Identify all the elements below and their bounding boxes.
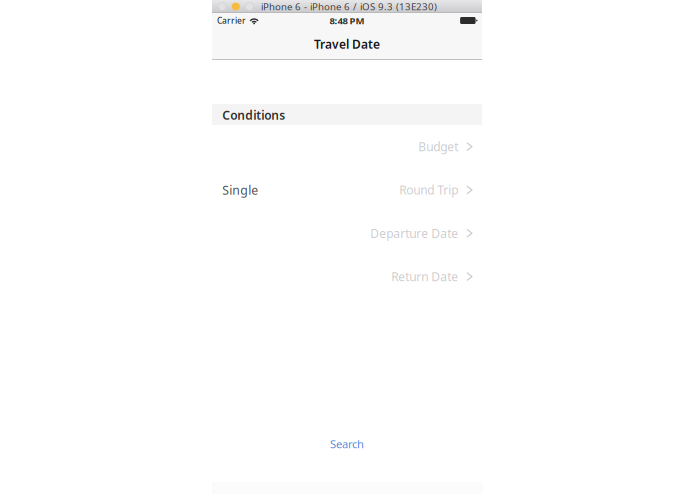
- staticText: iPhone 6 - iPhone 6 / iOS 9.3 (13E230): [261, 0, 437, 13]
- button[interactable]: Close window: [218, 2, 226, 10]
- staticText: Conditions: [222, 107, 285, 123]
- staticText: Return Date: [391, 268, 458, 285]
- button[interactable]: Single: [212, 168, 482, 212]
- staticText: Round Trip: [399, 182, 458, 198]
- button[interactable]: Budget: [212, 125, 482, 168]
- staticText: 8:48 PM: [329, 14, 364, 27]
- button[interactable]: Return Date: [212, 255, 482, 298]
- staticText: Single: [222, 182, 258, 198]
- button[interactable]: Departure Date: [212, 212, 482, 255]
- staticText: Search: [330, 436, 364, 451]
- staticText: Budget: [418, 138, 458, 155]
- button[interactable]: Zoom window: [245, 2, 253, 10]
- staticText: Carrier: [217, 15, 246, 26]
- staticText: Travel Date: [314, 36, 380, 52]
- button[interactable]: Minimize window: [232, 2, 240, 10]
- button[interactable]: Search: [212, 432, 482, 456]
- staticText: Departure Date: [370, 225, 458, 241]
